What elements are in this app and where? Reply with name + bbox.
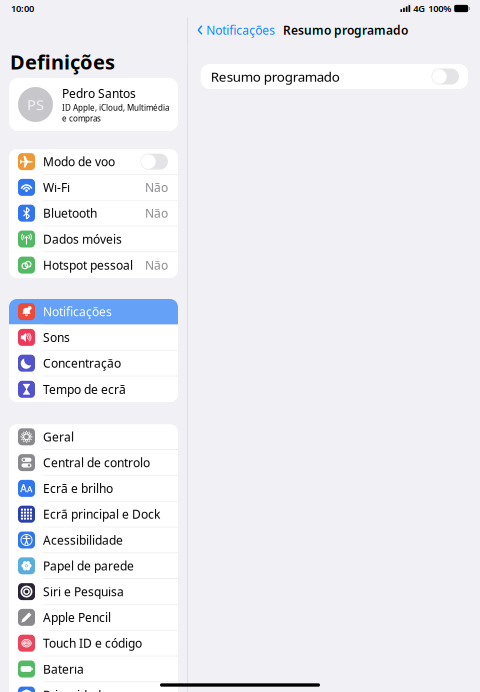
staticText: 100%	[428, 2, 451, 15]
staticText: Não	[145, 205, 168, 221]
staticText: Privacidade	[43, 687, 108, 692]
staticText: Notificações	[206, 22, 275, 38]
staticText: Concentração	[43, 355, 121, 371]
staticText: Não	[145, 179, 168, 195]
button[interactable]: Hotspot pessoal	[9, 252, 178, 278]
button[interactable]: Geral	[9, 424, 178, 450]
button[interactable]: Resumo programado	[201, 64, 468, 89]
staticText: Wi-Fi	[43, 179, 70, 195]
staticText: Bateria	[43, 661, 84, 677]
button[interactable]: Tempo de ecrã	[9, 376, 178, 402]
button[interactable]: Sons	[9, 325, 178, 351]
staticText: Geral	[43, 429, 74, 445]
button[interactable]: Bateria	[9, 656, 178, 682]
staticText: Central de controlo	[43, 455, 150, 470]
staticText: Papel de parede	[43, 558, 134, 574]
button[interactable]: Wi-Fi	[9, 175, 178, 201]
staticText: PS	[27, 95, 44, 114]
staticText: Notificações	[43, 304, 112, 319]
button[interactable]: Papel de parede	[9, 553, 178, 579]
staticText: Não	[145, 257, 168, 273]
staticText: Acessibilidade	[43, 532, 123, 548]
staticText: 4G	[413, 2, 425, 15]
staticText: Resumo programado	[283, 22, 408, 38]
staticText: Hotspot pessoal	[43, 257, 133, 273]
staticText: Pedro Santos	[62, 85, 136, 101]
staticText: Dados móveis	[43, 231, 122, 247]
staticText: Siri e Pesquisa	[43, 584, 124, 599]
button[interactable]: Notificações	[9, 299, 178, 325]
button[interactable]: Modo de voo	[9, 149, 178, 175]
staticText: ID Apple, iCloud, Multimédia	[62, 102, 169, 113]
button[interactable]: Notificações	[188, 17, 281, 43]
staticText: Bluetooth	[43, 205, 97, 221]
button[interactable]: Dados móveis	[9, 226, 178, 252]
staticText: Sons	[43, 329, 70, 345]
staticText: 10:00	[11, 2, 34, 15]
button[interactable]: Acessibilidade	[9, 527, 178, 553]
button[interactable]: Touch ID e código	[9, 631, 178, 656]
button[interactable]: Bluetooth	[9, 201, 178, 226]
staticText: e compras	[62, 113, 101, 124]
staticText: Definições	[10, 48, 115, 75]
button[interactable]: Concentração	[9, 351, 178, 376]
staticText: Ecrã e brilho	[43, 480, 113, 496]
staticText: Apple Pencil	[43, 609, 111, 625]
button[interactable]: Apple Pencil	[9, 605, 178, 631]
staticText: Tempo de ecrã	[43, 381, 126, 397]
button[interactable]: Ecrã e brilho	[9, 476, 178, 502]
button[interactable]: Ecrã principal e Dock	[9, 502, 178, 527]
button[interactable]: Central de controlo	[9, 450, 178, 476]
button[interactable]: Privacidade	[9, 682, 178, 692]
staticText: Resumo programado	[211, 68, 340, 85]
button[interactable]: PS	[0, 78, 190, 131]
staticText: Touch ID e código	[43, 635, 142, 651]
staticText: Ecrã principal e Dock	[43, 506, 160, 522]
button[interactable]: Siri e Pesquisa	[9, 579, 178, 605]
staticText: Modo de voo	[43, 154, 115, 169]
